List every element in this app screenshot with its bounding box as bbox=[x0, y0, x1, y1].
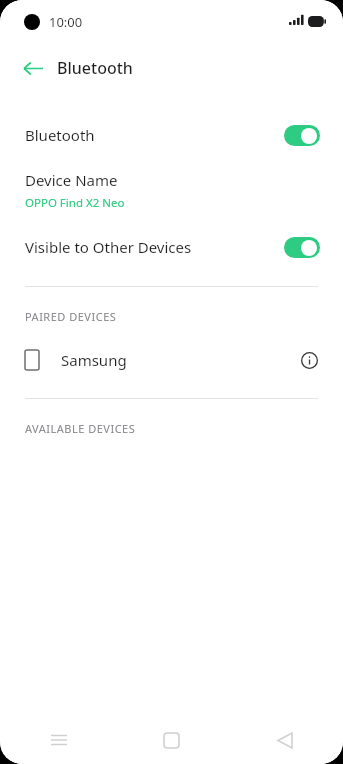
button[interactable]: Device Name bbox=[2, 170, 341, 211]
staticText: 10:00 bbox=[49, 13, 83, 31]
button[interactable]: Home bbox=[115, 716, 228, 764]
staticText: Visible to Other Devices bbox=[25, 237, 192, 257]
staticText: Device Name bbox=[25, 170, 118, 190]
staticText: PAIRED DEVICES bbox=[25, 309, 117, 324]
button[interactable]: Recent apps bbox=[2, 716, 115, 764]
button[interactable]: Samsung bbox=[2, 342, 341, 378]
staticText: OPPO Find X2 Neo bbox=[25, 195, 125, 211]
staticText: Bluetooth bbox=[25, 125, 95, 145]
staticText: AVAILABLE DEVICES bbox=[25, 421, 136, 436]
button[interactable]: Bluetooth toggle bbox=[284, 125, 320, 146]
staticText: Bluetooth bbox=[57, 57, 133, 79]
button[interactable]: Back bbox=[228, 716, 341, 764]
button[interactable]: Visible to other devices toggle bbox=[284, 237, 320, 258]
button[interactable]: Device info bbox=[298, 349, 320, 371]
staticText: Samsung bbox=[61, 350, 127, 370]
button[interactable]: Bluetooth bbox=[2, 115, 341, 155]
button[interactable]: Back bbox=[16, 51, 50, 85]
button[interactable]: Visible to Other Devices bbox=[2, 229, 341, 265]
